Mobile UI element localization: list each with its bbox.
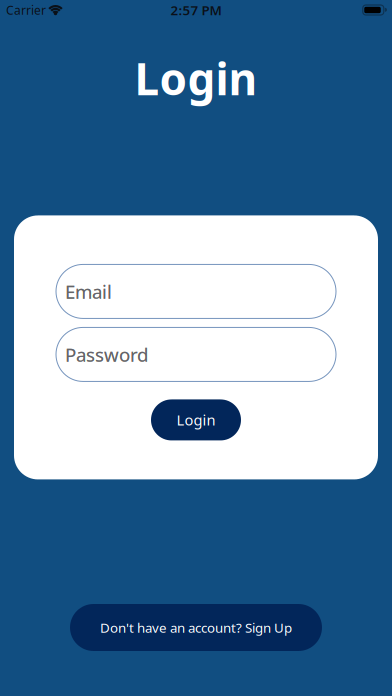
- staticText: 2:57 PM: [170, 1, 221, 19]
- staticText: Login: [176, 410, 215, 430]
- staticText: Don't have an account? Sign Up: [100, 619, 292, 636]
- staticText: Password: [65, 342, 148, 367]
- staticText: Email: [65, 279, 112, 304]
- staticText: Password: [65, 342, 148, 367]
- button[interactable]: Login: [151, 399, 241, 440]
- secureTextField[interactable]: Password: [65, 342, 336, 367]
- staticText: Carrier: [6, 2, 46, 18]
- textField[interactable]: Email: [65, 279, 336, 304]
- staticText: Email: [65, 279, 112, 304]
- staticText: Login: [134, 49, 257, 107]
- button[interactable]: Don't have an account? Sign Up: [70, 604, 322, 651]
